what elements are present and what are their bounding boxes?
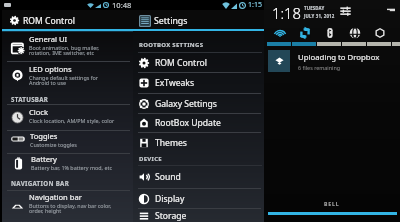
staticText: 1:15 <box>248 0 262 10</box>
button[interactable]: ExTweaks <box>133 73 264 93</box>
button[interactable]: ROM Control <box>2 10 133 29</box>
button[interactable]: Display <box>133 189 264 208</box>
staticText: ROOTBOX SETTINGS <box>139 41 204 49</box>
staticText: Battery bar, 1% battery mod, etc <box>31 164 113 171</box>
button[interactable]: Uploading to Dropbox <box>264 49 400 73</box>
button[interactable]: General UI <box>2 32 133 61</box>
button[interactable]: Wi-Fi <box>267 23 292 42</box>
staticText: Display <box>155 193 185 205</box>
staticText: JULY 31, 2012 <box>304 13 335 19</box>
button[interactable]: Mobile data <box>342 23 367 42</box>
staticText: RootBox Update <box>155 117 221 129</box>
staticText: Customize toggles <box>30 141 77 148</box>
button[interactable]: ROM Control <box>133 53 264 72</box>
button[interactable]: Battery <box>2 154 133 179</box>
button[interactable]: Settings <box>133 10 264 29</box>
staticText: Galaxy Settings <box>155 98 217 110</box>
staticText: Settings <box>154 15 188 27</box>
staticText: Sound <box>155 171 181 183</box>
staticText: TUESDAY <box>304 5 325 11</box>
staticText: ROM Control <box>155 57 207 69</box>
button[interactable]: Quick settings <box>339 4 352 17</box>
staticText: 10:48 <box>112 0 132 10</box>
staticText: BELL <box>324 200 340 207</box>
staticText: Uploading to Dropbox <box>298 52 380 63</box>
button[interactable]: Clock <box>2 105 133 130</box>
staticText: STATUSBAR <box>11 95 49 103</box>
staticText: NAVIGATION BAR <box>11 179 69 187</box>
staticText: Navigation bar <box>29 192 82 202</box>
button[interactable]: Clear all notifications <box>386 7 396 13</box>
button[interactable]: LED options <box>2 62 133 93</box>
button[interactable]: Navigation bar <box>2 191 133 222</box>
button[interactable]: Storage <box>133 209 264 222</box>
button[interactable]: Galaxy Settings <box>133 94 264 113</box>
staticText: ExTweaks <box>155 77 195 89</box>
button[interactable]: Bluetooth <box>317 23 342 42</box>
button[interactable]: Auto rotate <box>292 23 317 42</box>
button[interactable]: Sound <box>133 166 264 188</box>
staticText: ROM Control <box>23 15 75 27</box>
button[interactable]: Battery <box>367 23 392 42</box>
staticText: LED options <box>29 64 72 74</box>
button[interactable]: Toggles <box>2 131 133 153</box>
staticText: Clock <box>29 107 49 117</box>
staticText: Storage <box>155 210 187 222</box>
button[interactable]: Themes <box>133 133 264 152</box>
staticText: Themes <box>155 137 187 149</box>
staticText: General UI <box>29 34 68 44</box>
staticText: 1:18 <box>272 3 301 23</box>
staticText: 6 files remaining <box>298 64 341 71</box>
staticText: Battery <box>31 154 57 164</box>
staticText: Change default settings for Android to u… <box>29 74 99 87</box>
staticText: Buttons to display, nav bar color, order… <box>29 202 112 215</box>
staticText: DEVICE <box>139 155 162 163</box>
staticText: Clock location, AM/PM style, color <box>29 117 115 124</box>
staticText: Boot animation, bug mailer, rotation, IM… <box>29 44 100 57</box>
button[interactable]: RootBox Update <box>133 114 264 132</box>
staticText: Toggles <box>30 131 58 141</box>
